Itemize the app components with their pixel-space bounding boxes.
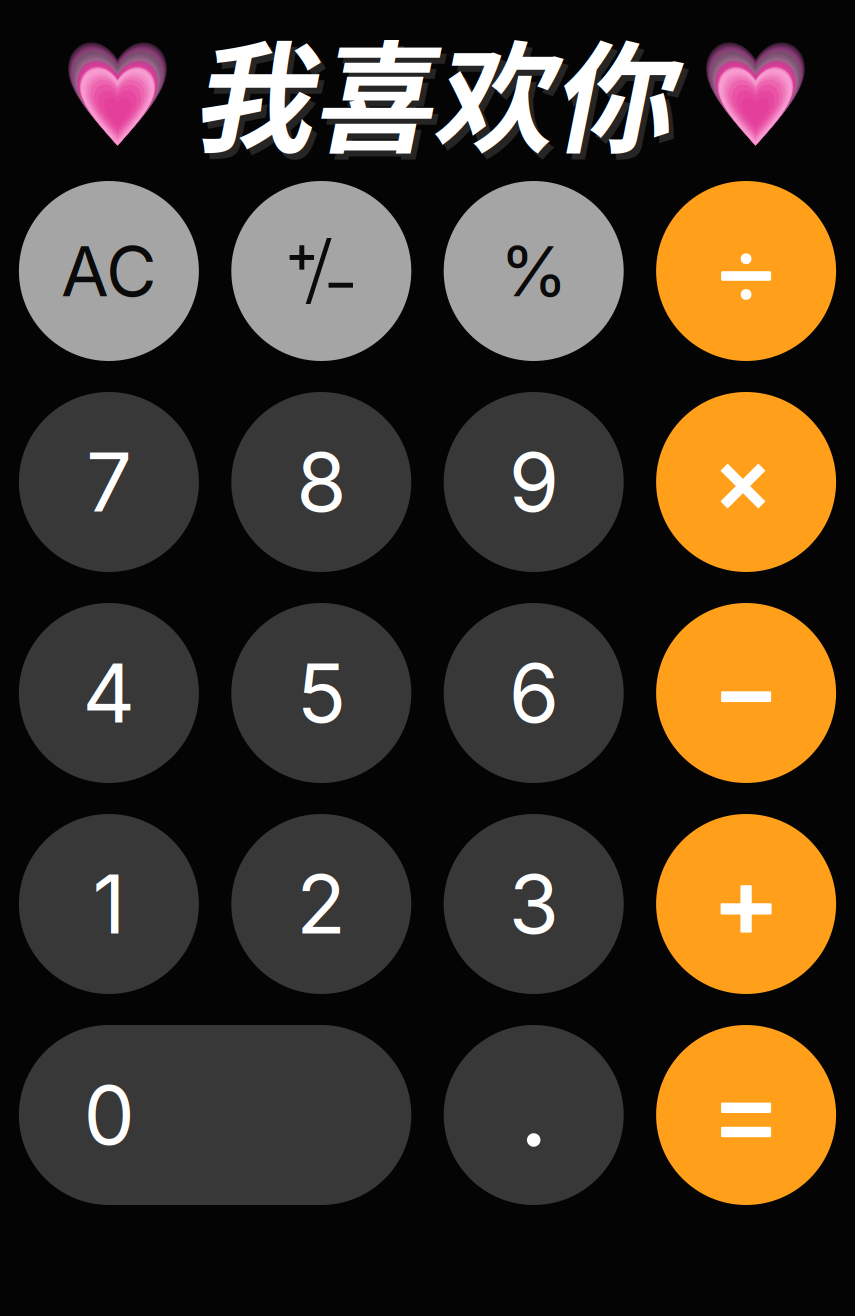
staticText: 6 <box>509 644 559 742</box>
staticText: AC <box>61 229 157 313</box>
button[interactable]: Minus <box>656 603 836 783</box>
button[interactable]: 3 <box>444 814 624 994</box>
staticText: 2 <box>296 855 346 953</box>
button[interactable]: 4 <box>19 603 199 783</box>
button[interactable]: Plus <box>656 814 836 994</box>
button[interactable]: 1 <box>19 814 199 994</box>
staticText: 8 <box>296 433 346 531</box>
staticText: 7 <box>86 433 132 531</box>
button[interactable]: 9 <box>444 392 624 572</box>
button[interactable]: Plus minus <box>231 181 411 361</box>
button[interactable]: Divide <box>656 181 836 361</box>
button[interactable]: 0 <box>19 1025 411 1205</box>
staticText: % <box>500 229 568 313</box>
staticText: 0 <box>83 1066 134 1164</box>
button[interactable]: 8 <box>231 392 411 572</box>
button[interactable]: 2 <box>231 814 411 994</box>
button[interactable]: % <box>444 181 624 361</box>
button[interactable]: Equals <box>656 1025 836 1205</box>
button[interactable]: AC <box>19 181 199 361</box>
staticText: 3 <box>509 855 559 953</box>
staticText: 1 <box>92 855 125 953</box>
staticText: 5 <box>297 644 346 742</box>
button[interactable]: 7 <box>19 392 199 572</box>
button[interactable]: Decimal point <box>444 1025 624 1205</box>
button[interactable]: 5 <box>231 603 411 783</box>
button[interactable]: Multiply <box>656 392 836 572</box>
staticText: 9 <box>509 433 559 531</box>
button[interactable]: 6 <box>444 603 624 783</box>
staticText: 4 <box>82 644 135 742</box>
staticText: 我喜欢你 <box>196 10 676 183</box>
staticText: 我喜欢你 <box>191 4 671 177</box>
